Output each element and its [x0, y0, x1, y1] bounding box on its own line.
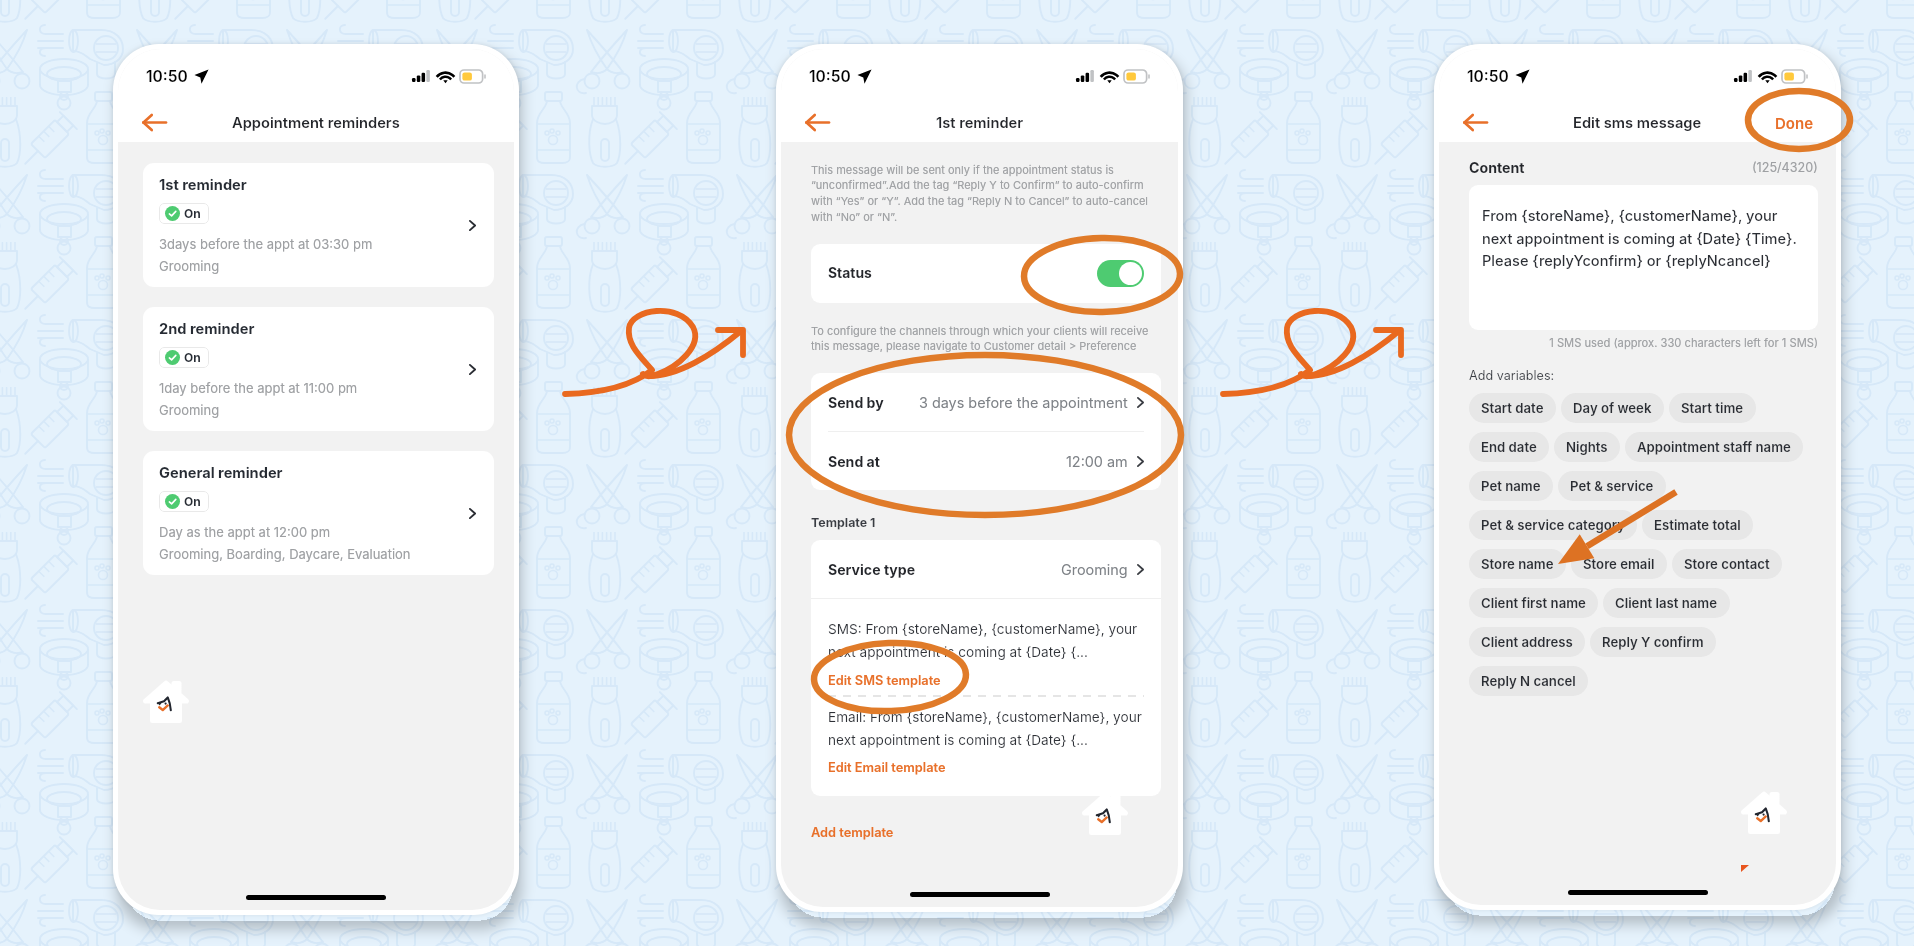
button[interactable]: Client first name: [1469, 588, 1598, 618]
staticText: Store contact: [1684, 556, 1770, 572]
staticText: Appointment reminders: [232, 114, 400, 132]
staticText: Edit sms message: [1573, 114, 1702, 132]
button[interactable]: 1st reminder: [143, 163, 494, 287]
button[interactable]: Estimate total: [1642, 510, 1753, 540]
staticText: Done: [1775, 114, 1814, 132]
staticText: Edit Email template: [828, 760, 946, 775]
staticText: Send at: [828, 453, 880, 470]
staticText: Appointment staff name: [1637, 439, 1791, 455]
staticText: Start time: [1681, 400, 1744, 416]
button[interactable]: Start date: [1469, 393, 1556, 423]
staticText: From {storeName}, {customerName}, your n…: [1482, 207, 1805, 270]
button[interactable]: Pet & service category: [1469, 510, 1637, 540]
staticText: Email: From {storeName}, {customerName},…: [828, 709, 1144, 748]
staticText: Estimate total: [1654, 517, 1741, 533]
staticText: Add template: [811, 825, 894, 840]
button[interactable]: Edit Email template: [828, 760, 946, 775]
staticText: Client last name: [1615, 595, 1718, 611]
staticText: Grooming, Boarding, Daycare, Evaluation: [159, 546, 411, 562]
button[interactable]: End date: [1469, 432, 1549, 462]
button[interactable]: Send at: [811, 432, 1161, 490]
staticText: Pet & service category: [1481, 517, 1625, 533]
button[interactable]: Status: [811, 244, 1161, 303]
button[interactable]: Start time: [1669, 393, 1756, 423]
staticText: Store email: [1583, 556, 1655, 572]
staticText: 2nd reminder: [159, 320, 255, 338]
staticText: Day as the appt at 12:00 pm: [159, 524, 331, 540]
staticText: On: [184, 206, 201, 221]
staticText: 1day before the appt at 11:00 pm: [159, 380, 358, 396]
staticText: Reply N cancel: [1481, 673, 1576, 689]
staticText: Start date: [1481, 400, 1544, 416]
button[interactable]: Client last name: [1603, 588, 1730, 618]
staticText: On: [184, 494, 201, 509]
button[interactable]: From {storeName}, {customerName}, your n…: [1469, 185, 1818, 330]
button[interactable]: General reminder: [143, 451, 494, 575]
staticText: Pet name: [1481, 478, 1541, 494]
staticText: 10:50: [146, 67, 188, 86]
button[interactable]: Add template: [811, 825, 894, 840]
staticText: Add variables:: [1469, 368, 1555, 383]
button[interactable]: Back: [795, 103, 839, 142]
button[interactable]: Store name: [1469, 549, 1566, 579]
staticText: Status: [828, 265, 872, 282]
button[interactable]: Send by: [811, 373, 1161, 431]
staticText: 3days before the appt at 03:30 pm: [159, 236, 373, 252]
staticText: This message will be sent only if the ap…: [811, 163, 1161, 224]
staticText: To configure the channels through which …: [811, 324, 1161, 353]
staticText: End date: [1481, 439, 1537, 455]
staticText: Reply Y confirm: [1602, 634, 1704, 650]
staticText: 10:50: [1467, 67, 1509, 86]
staticText: 1st reminder: [936, 114, 1024, 132]
staticText: 10:50: [809, 67, 851, 86]
button[interactable]: Service type: [811, 540, 1161, 598]
staticText: 1st reminder: [159, 176, 247, 194]
staticText: Day of week: [1573, 400, 1652, 416]
staticText: 3 days before the appointment: [919, 394, 1128, 411]
staticText: Template 1: [811, 515, 876, 530]
staticText: 12:00 am: [1066, 453, 1128, 470]
staticText: 1 SMS used (approx. 330 characters left …: [1469, 336, 1818, 350]
staticText: Grooming: [159, 258, 220, 274]
button[interactable]: Day of week: [1561, 393, 1664, 423]
staticText: Grooming: [159, 402, 220, 418]
button[interactable]: Appointment staff name: [1625, 432, 1803, 462]
staticText: (125/4320): [1752, 160, 1818, 175]
button[interactable]: Back: [132, 103, 176, 142]
staticText: Content: [1469, 159, 1525, 176]
button[interactable]: Edit SMS template: [828, 673, 941, 688]
button[interactable]: Done: [1753, 104, 1836, 142]
staticText: Grooming: [1061, 561, 1128, 578]
button[interactable]: Back: [1453, 103, 1497, 142]
button[interactable]: Store email: [1571, 549, 1667, 579]
button[interactable]: Nights: [1554, 432, 1620, 462]
button[interactable]: Store contact: [1672, 549, 1782, 579]
staticText: On: [184, 350, 201, 365]
button[interactable]: Pet & service: [1558, 471, 1666, 501]
button[interactable]: Pet name: [1469, 471, 1553, 501]
button[interactable]: 2nd reminder: [143, 307, 494, 431]
staticText: Service type: [828, 561, 916, 578]
staticText: Client address: [1481, 634, 1573, 650]
button[interactable]: Client address: [1469, 627, 1585, 657]
staticText: SMS: From {storeName}, {customerName}, y…: [828, 621, 1144, 660]
staticText: Nights: [1566, 439, 1608, 455]
staticText: General reminder: [159, 464, 283, 482]
button[interactable]: Reply Y confirm: [1590, 627, 1716, 657]
staticText: Edit SMS template: [828, 673, 941, 688]
staticText: Store name: [1481, 556, 1554, 572]
staticText: Pet & service: [1570, 478, 1654, 494]
button[interactable]: Reply N cancel: [1469, 666, 1588, 696]
staticText: Client first name: [1481, 595, 1586, 611]
staticText: Send by: [828, 394, 884, 411]
